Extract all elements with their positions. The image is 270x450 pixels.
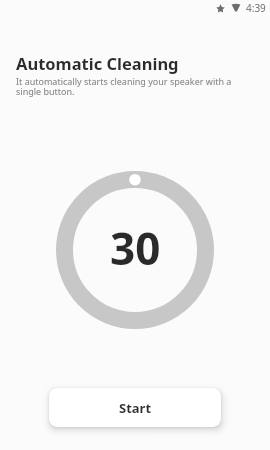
other: Starred [216,4,225,13]
staticText: 30 [110,218,161,278]
staticText: It automatically starts cleaning your sp… [16,75,236,97]
button[interactable]: Start [49,388,221,427]
staticText: 4:39 [246,1,266,15]
other: Wi-Fi [231,4,241,12]
staticText: Start [119,399,152,417]
staticText: Automatic Cleaning [16,52,179,74]
